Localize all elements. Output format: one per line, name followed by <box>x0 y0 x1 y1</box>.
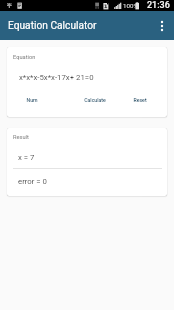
staticText: Result <box>13 134 29 141</box>
staticText: x = 7 <box>18 153 35 162</box>
staticText: Calculate <box>84 97 106 103</box>
button[interactable]: More options <box>150 14 174 38</box>
staticText: Num <box>26 97 38 103</box>
staticText: error = 0 <box>18 177 47 186</box>
button[interactable]: Calculate <box>78 93 112 107</box>
staticText: 100% <box>123 2 138 9</box>
button[interactable]: Num <box>15 93 49 107</box>
staticText: Reset <box>133 97 147 103</box>
staticText: Equation Calculator <box>8 20 97 32</box>
button[interactable]: Reset <box>123 93 157 107</box>
staticText: Equation <box>13 54 36 61</box>
staticText: 21:36 <box>147 0 170 11</box>
staticText: x*x*x-5x*x-17x+ 21=0 <box>19 73 94 82</box>
